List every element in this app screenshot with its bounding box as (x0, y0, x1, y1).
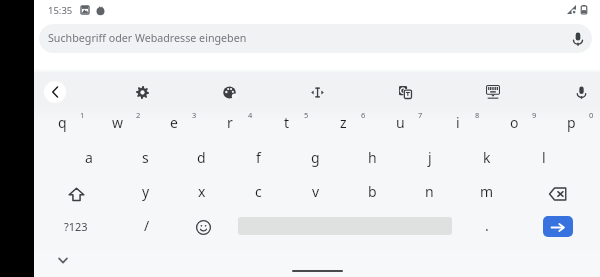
staticText: 3 (192, 110, 197, 120)
staticText: 0 (589, 110, 594, 120)
staticText: k (483, 148, 491, 167)
staticText: q (58, 113, 67, 132)
staticText: w (112, 113, 124, 132)
button[interactable]: y (118, 175, 174, 209)
button[interactable]: . (458, 209, 515, 243)
button[interactable]: Backspace (515, 175, 600, 209)
button[interactable]: Translate (384, 73, 426, 107)
button[interactable]: e (146, 107, 202, 141)
button[interactable]: q (34, 107, 90, 141)
staticText: y (142, 182, 150, 201)
staticText: u (396, 113, 405, 132)
staticText: 15:35 (48, 4, 73, 17)
staticText: Suchbegriff oder Webadresse eingeben (48, 31, 247, 46)
staticText: 2 (136, 110, 141, 120)
button[interactable]: ?123 (34, 209, 118, 243)
button[interactable]: z (315, 107, 372, 141)
button[interactable]: s (117, 141, 173, 175)
button[interactable]: Text editing (296, 73, 338, 107)
button[interactable]: Emoji (175, 209, 232, 243)
staticText: j (428, 148, 432, 167)
button[interactable]: g (287, 141, 344, 175)
button[interactable]: m (458, 175, 515, 209)
button[interactable]: r (202, 107, 258, 141)
staticText: p (567, 113, 576, 132)
button[interactable]: Back (44, 81, 66, 103)
staticText: d (197, 148, 206, 167)
button[interactable]: Voice input (560, 73, 600, 107)
staticText: 6 (361, 110, 366, 120)
staticText: t (284, 113, 290, 132)
button[interactable]: b (344, 175, 401, 209)
button[interactable]: h (344, 141, 401, 175)
staticText: g (311, 148, 320, 167)
staticText: 4 (248, 110, 253, 120)
staticText: x (198, 182, 206, 201)
staticText: m (480, 182, 494, 201)
button[interactable]: Themes (208, 73, 250, 107)
button[interactable]: Settings (121, 73, 163, 107)
button[interactable]: a (61, 141, 117, 175)
button[interactable]: Voice search (568, 29, 588, 49)
staticText: n (425, 182, 434, 201)
staticText: o (510, 113, 519, 132)
staticText: v (312, 182, 320, 201)
button[interactable]: u (372, 107, 429, 141)
button[interactable]: c (230, 175, 287, 209)
staticText: 8 (475, 110, 480, 120)
staticText: c (255, 182, 262, 201)
staticText: s (142, 148, 149, 167)
button[interactable]: t (258, 107, 315, 141)
staticText: . (485, 216, 489, 235)
button[interactable]: d (173, 141, 230, 175)
staticText: z (340, 113, 347, 132)
staticText: b (368, 182, 377, 201)
button[interactable]: f (230, 141, 287, 175)
staticText: a (85, 148, 93, 167)
button[interactable]: j (401, 141, 458, 175)
button[interactable]: / (118, 209, 175, 243)
button[interactable]: Keyboard mode (472, 73, 514, 107)
staticText: h (368, 148, 377, 167)
staticText: e (170, 113, 178, 132)
button[interactable]: l (515, 141, 572, 175)
button[interactable]: n (401, 175, 458, 209)
button[interactable]: i (429, 107, 486, 141)
button[interactable]: Shift (34, 175, 118, 209)
button[interactable]: p (543, 107, 600, 141)
button[interactable]: Enter (543, 216, 573, 237)
button[interactable]: k (458, 141, 515, 175)
button[interactable]: w (90, 107, 146, 141)
button[interactable]: v (287, 175, 344, 209)
staticText: f (256, 148, 261, 167)
staticText: 9 (532, 110, 537, 120)
staticText: r (227, 113, 233, 132)
button[interactable]: x (174, 175, 230, 209)
staticText: ?123 (64, 219, 88, 234)
staticText: i (456, 113, 460, 132)
staticText: l (542, 148, 546, 167)
staticText: 1 (80, 110, 85, 120)
button[interactable]: Suchbegriff oder Webadresse eingeben (39, 24, 592, 53)
staticText: / (144, 216, 150, 235)
staticText: 5 (304, 110, 309, 120)
button[interactable]: o (486, 107, 543, 141)
staticText: 7 (418, 110, 423, 120)
button[interactable]: Hide keyboard (52, 249, 74, 271)
